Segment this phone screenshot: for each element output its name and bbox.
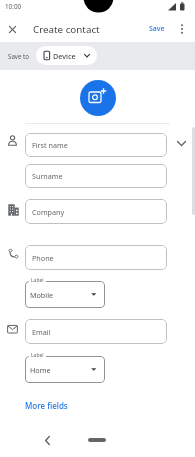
staticText: Mobile — [30, 290, 54, 300]
button[interactable]: Device — [36, 46, 97, 65]
staticText: Label — [31, 277, 44, 284]
staticText: Save to — [8, 52, 30, 60]
button[interactable] — [4, 21, 20, 37]
button[interactable]: Save — [144, 21, 170, 37]
button[interactable]: Home — [25, 356, 105, 383]
button[interactable] — [40, 433, 54, 447]
button[interactable] — [174, 21, 190, 37]
staticText: Device — [53, 51, 76, 61]
staticText: Surname — [32, 171, 63, 181]
staticText: Label — [31, 352, 44, 359]
staticText: Email — [32, 327, 51, 337]
button[interactable]: Company — [25, 199, 167, 224]
button[interactable]: Phone — [25, 245, 167, 270]
button[interactable]: More fields — [25, 398, 75, 412]
button[interactable]: Mobile — [25, 281, 105, 308]
button[interactable] — [88, 438, 106, 442]
button[interactable] — [80, 80, 116, 116]
button[interactable]: Surname — [25, 164, 167, 188]
staticText: Phone — [32, 253, 54, 263]
button[interactable] — [174, 137, 188, 149]
staticText: Create contact — [33, 23, 100, 36]
staticText: 10:00 — [5, 2, 22, 11]
staticText: Home — [30, 365, 51, 375]
staticText: More fields — [25, 400, 68, 411]
staticText: First name — [32, 140, 68, 150]
button[interactable]: Email — [25, 319, 167, 344]
staticText: Company — [32, 207, 65, 217]
button[interactable]: First name — [25, 133, 167, 157]
staticText: Save — [149, 24, 165, 34]
